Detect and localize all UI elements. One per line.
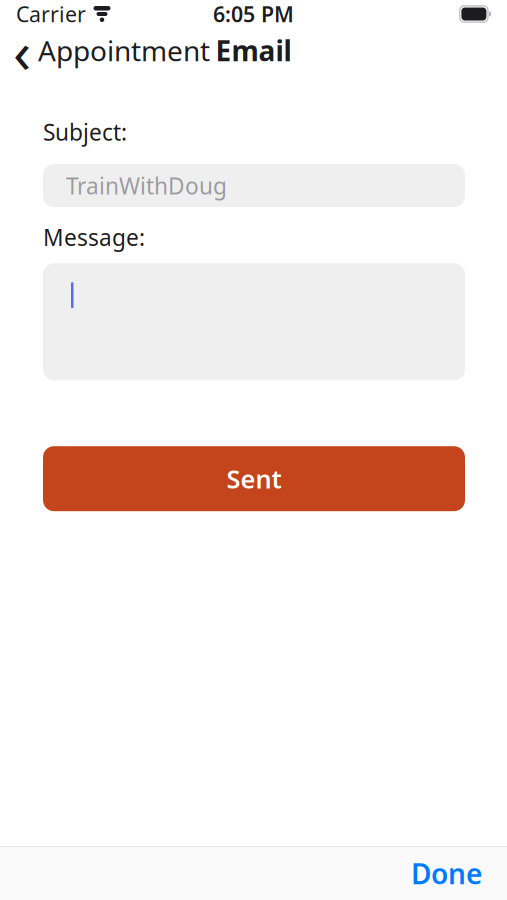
button[interactable]: TrainWithDoug [43, 164, 465, 207]
staticText: ‹ [13, 11, 31, 89]
button[interactable] [43, 263, 465, 380]
button[interactable]: Sent [43, 446, 465, 511]
staticText: Email [215, 32, 291, 69]
staticText: 6:05 PM [213, 0, 294, 28]
staticText: Done [411, 855, 482, 892]
staticText: Subject: [43, 117, 127, 147]
staticText: Appointment [38, 32, 210, 69]
button[interactable]: ‹ [0, 28, 224, 73]
staticText: Carrier [16, 0, 86, 28]
button[interactable]: Done [393, 847, 500, 900]
staticText: Message: [43, 222, 145, 252]
staticText: TrainWithDoug [66, 171, 227, 201]
staticText: Sent [226, 462, 281, 495]
